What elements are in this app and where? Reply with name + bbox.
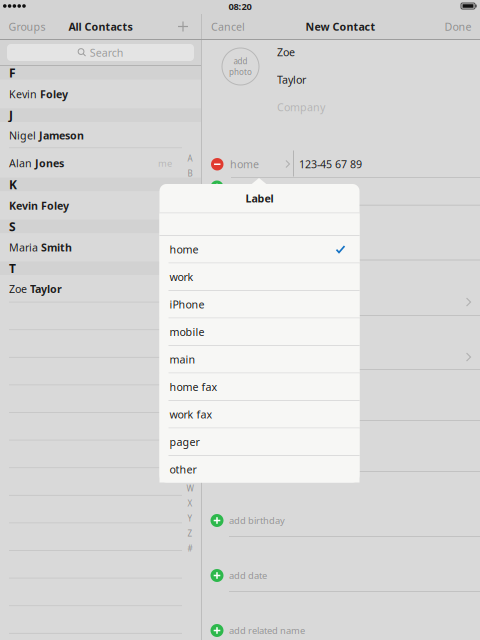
staticText: V xyxy=(187,468,192,479)
button[interactable]: Kevin Foley xyxy=(0,191,201,220)
staticText: 123-45 67 89 xyxy=(299,157,362,171)
button[interactable]: work xyxy=(159,263,359,290)
staticText: Alan xyxy=(9,156,35,170)
staticText: N xyxy=(187,348,193,359)
staticText: Maria xyxy=(9,240,41,254)
staticText: mobile xyxy=(169,325,204,339)
staticText: Cancel xyxy=(211,19,245,34)
staticText: Q xyxy=(187,393,193,404)
staticText: Z xyxy=(187,528,192,539)
staticText: A xyxy=(187,153,192,164)
button[interactable]: iPhone xyxy=(159,291,359,317)
staticText: T xyxy=(9,260,16,276)
staticText: other xyxy=(169,462,196,476)
staticText: J xyxy=(189,288,191,299)
staticText: I xyxy=(188,273,191,284)
staticText: Search xyxy=(90,45,124,60)
staticText: O xyxy=(187,363,193,374)
staticText: home xyxy=(169,242,198,256)
staticText: 08:20 xyxy=(228,0,251,13)
staticText: Nigel xyxy=(9,128,39,142)
staticText: main xyxy=(169,352,195,366)
staticText: W xyxy=(186,483,193,494)
staticText: B xyxy=(187,168,192,179)
staticText: pager xyxy=(169,435,199,449)
staticText: home xyxy=(230,157,259,171)
staticText: iPhone xyxy=(169,297,204,311)
button[interactable]: add birthday xyxy=(202,514,480,568)
staticText: F xyxy=(188,228,192,239)
staticText: P xyxy=(187,378,192,389)
staticText: S xyxy=(9,219,16,234)
staticText: New Contact xyxy=(305,19,375,34)
staticText: Smith xyxy=(41,240,72,254)
button[interactable]: add date xyxy=(202,569,480,623)
staticText: Kevin Foley xyxy=(9,198,69,213)
staticText: C xyxy=(187,183,192,194)
staticText: K xyxy=(9,177,17,192)
staticText: Foley xyxy=(40,87,68,101)
button[interactable]: other xyxy=(159,456,359,482)
button[interactable]: Zoe xyxy=(0,275,201,303)
staticText: Taylor xyxy=(277,72,306,87)
button[interactable]: Cancel xyxy=(205,14,251,39)
button[interactable]: home xyxy=(230,150,290,177)
staticText: K xyxy=(187,303,192,314)
staticText: All Contacts xyxy=(68,19,132,34)
button[interactable]: Nigel xyxy=(0,122,201,148)
staticText: Label xyxy=(245,191,273,205)
staticText: J xyxy=(9,107,13,123)
button[interactable]: Maria xyxy=(0,233,201,261)
button[interactable]: Kevin xyxy=(0,80,201,108)
staticText: photo xyxy=(229,66,252,77)
staticText: Y xyxy=(187,513,192,524)
staticText: Taylor xyxy=(30,282,62,296)
staticText: Company xyxy=(277,100,325,114)
button[interactable]: main xyxy=(159,346,359,372)
button[interactable]: Groups xyxy=(4,14,50,39)
staticText: U xyxy=(187,453,193,464)
staticText: S xyxy=(188,423,192,434)
staticText: R xyxy=(187,408,192,419)
staticText: Done xyxy=(444,19,471,34)
staticText: home fax xyxy=(169,380,217,394)
staticText: work xyxy=(169,270,193,284)
staticText: # xyxy=(187,543,192,554)
staticText: M xyxy=(186,333,193,344)
staticText: Kevin xyxy=(9,87,40,101)
button[interactable]: add related name xyxy=(202,624,480,640)
staticText: H xyxy=(187,258,193,269)
button[interactable]: Alan xyxy=(0,148,201,178)
staticText: F xyxy=(9,65,16,81)
staticText: add birthday xyxy=(229,514,285,527)
button[interactable]: work fax xyxy=(159,401,359,427)
staticText: T xyxy=(188,438,192,449)
staticText: Zoe xyxy=(277,45,295,59)
staticText: Jameson xyxy=(39,128,84,142)
staticText: work fax xyxy=(169,407,212,421)
staticText: add related name xyxy=(229,624,305,637)
staticText: add date xyxy=(229,569,267,582)
button[interactable]: home xyxy=(159,236,359,262)
button[interactable]: mobile xyxy=(159,318,359,345)
staticText: Groups xyxy=(8,19,45,34)
staticText: X xyxy=(187,498,192,509)
button[interactable]: Done xyxy=(437,14,479,39)
button[interactable]: home fax xyxy=(159,373,359,400)
button[interactable]: Add contact xyxy=(169,14,197,39)
staticText: G xyxy=(187,243,193,254)
staticText: Jones xyxy=(35,156,64,170)
staticText: Zoe xyxy=(9,282,30,296)
staticText: add xyxy=(233,56,247,66)
button[interactable]: pager xyxy=(159,428,359,455)
staticText: me xyxy=(158,157,172,169)
